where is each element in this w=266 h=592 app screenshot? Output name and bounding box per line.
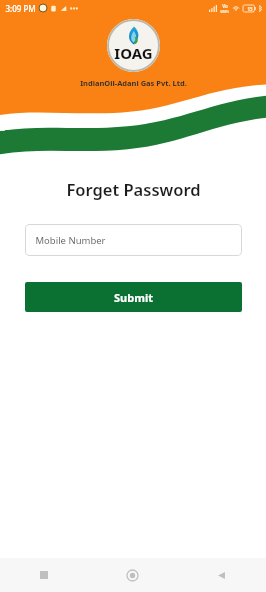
staticText: IOAG bbox=[114, 43, 153, 63]
staticText: Forget Password bbox=[66, 178, 201, 200]
staticText: WiFi bbox=[220, 9, 229, 14]
button[interactable]: Mobile Number bbox=[25, 224, 242, 256]
staticText: IndianOil-Adani Gas Pvt. Ltd. bbox=[80, 78, 187, 88]
button[interactable]: Submit bbox=[25, 282, 242, 312]
staticText: Mobile Number bbox=[35, 234, 106, 247]
button[interactable]: Home bbox=[88, 558, 177, 592]
button[interactable]: Back bbox=[177, 558, 266, 592]
button[interactable]: Recents bbox=[0, 558, 88, 592]
staticText: 15 bbox=[247, 6, 253, 12]
staticText: 3:09 PM bbox=[5, 3, 36, 14]
staticText: Submit bbox=[114, 290, 153, 305]
staticText: Vo bbox=[222, 3, 228, 9]
